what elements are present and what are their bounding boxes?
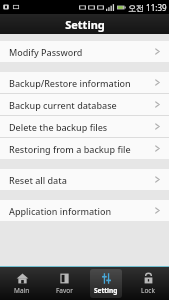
staticText: Delete the backup files <box>9 121 155 133</box>
button[interactable]: Main <box>0 267 43 300</box>
button[interactable]: Restoring from a backup file <box>0 138 169 159</box>
button[interactable]: Reset all data <box>0 169 169 190</box>
other: Lock <box>142 272 155 285</box>
staticText: Main <box>14 286 30 295</box>
staticText: Favor <box>56 286 73 295</box>
button[interactable]: Backup/Restore information <box>0 72 169 93</box>
staticText: Setting <box>94 286 118 295</box>
staticText: Setting <box>65 17 105 32</box>
button[interactable]: Favor <box>43 267 85 300</box>
other: Favor <box>58 272 71 285</box>
button[interactable]: Modify Password <box>0 41 169 62</box>
staticText: Backup/Restore information <box>9 77 155 89</box>
staticText: Reset all data <box>9 174 155 186</box>
other: Setting <box>100 272 113 285</box>
button[interactable]: Delete the backup files <box>0 116 169 137</box>
staticText: Application information <box>9 205 155 217</box>
button[interactable]: Lock <box>127 267 169 300</box>
staticText: Restoring from a backup file <box>9 143 155 155</box>
button[interactable]: Setting <box>85 267 127 300</box>
other: Main <box>16 272 29 285</box>
staticText: Modify Password <box>9 46 155 58</box>
staticText: Lock <box>141 286 155 295</box>
staticText: 오전 11:39 <box>128 2 167 13</box>
button[interactable]: Backup current database <box>0 94 169 115</box>
staticText: Backup current database <box>9 99 155 111</box>
button[interactable]: Application information <box>0 200 169 221</box>
